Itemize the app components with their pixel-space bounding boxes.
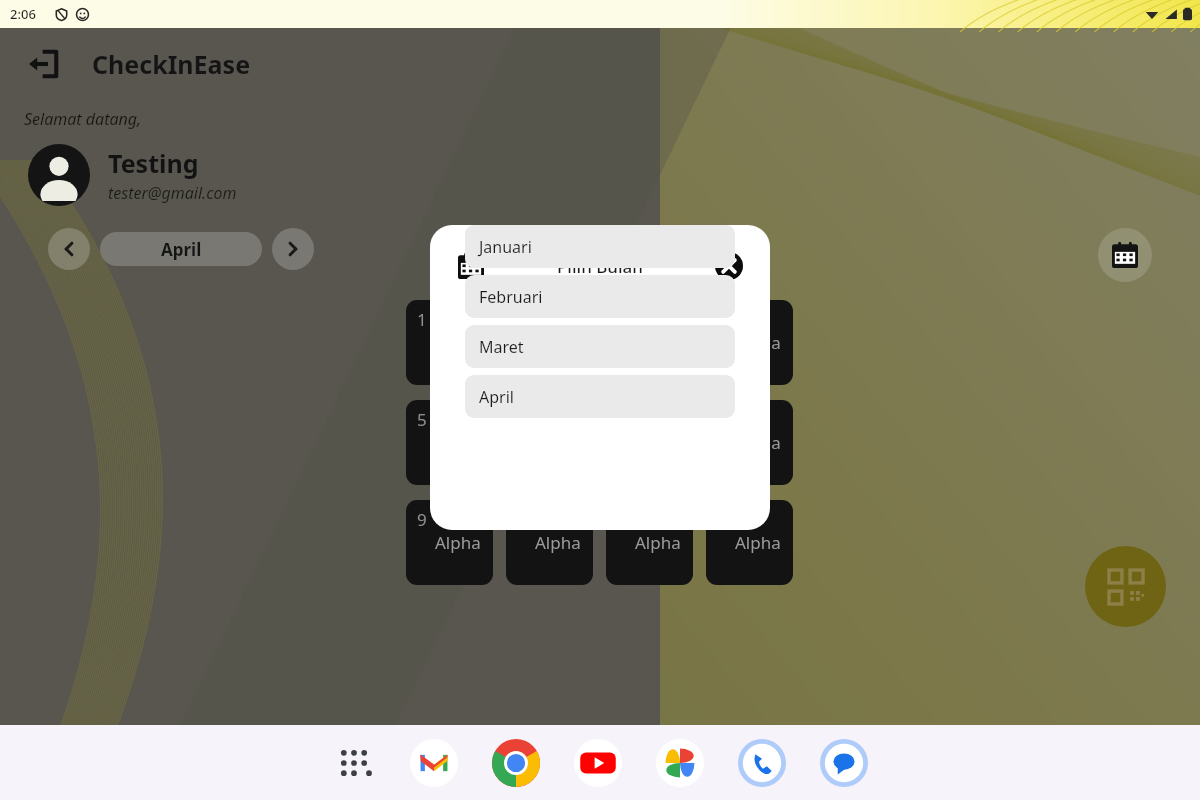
button[interactable]: April: [100, 232, 262, 266]
staticText: 5: [417, 408, 427, 431]
staticText: Februari: [479, 286, 543, 308]
staticText: Pilih Bulan: [557, 255, 643, 278]
staticText: Selamat datang,: [24, 108, 142, 130]
button[interactable]: YouTube: [572, 737, 624, 789]
button[interactable]: 5: [406, 400, 493, 485]
button[interactable]: 1: [406, 300, 493, 385]
button[interactable]: Open calendar: [1098, 228, 1152, 282]
staticText: 11: [617, 508, 637, 531]
button[interactable]: Januari: [465, 225, 735, 268]
staticText: Alpha: [535, 531, 581, 554]
button[interactable]: Close: [714, 251, 744, 281]
staticText: Alpha: [435, 531, 481, 554]
button[interactable]: 6: [506, 400, 593, 485]
staticText: 7: [617, 408, 627, 431]
staticText: 3: [617, 308, 627, 331]
button[interactable]: 7: [606, 400, 693, 485]
staticText: 8: [717, 408, 727, 431]
staticText: 2: [517, 308, 527, 331]
staticText: Alpha: [435, 331, 481, 354]
button[interactable]: 10: [506, 500, 593, 585]
staticText: 2:06: [10, 5, 36, 23]
staticText: 4: [717, 308, 727, 331]
staticText: Testing: [108, 146, 199, 180]
button[interactable]: Februari: [465, 275, 735, 318]
button[interactable]: Photos: [654, 737, 706, 789]
staticText: 12: [717, 508, 737, 531]
button[interactable]: 8: [706, 400, 793, 485]
button[interactable]: Phone: [736, 737, 788, 789]
button[interactable]: 12: [706, 500, 793, 585]
button[interactable]: Maret: [465, 325, 735, 368]
staticText: 1: [417, 308, 427, 331]
staticText: Alpha: [735, 431, 781, 454]
button[interactable]: Scan QR code: [1085, 546, 1166, 627]
staticText: Maret: [479, 336, 524, 358]
staticText: April: [161, 238, 202, 261]
button[interactable]: Next month: [272, 228, 314, 270]
staticText: CheckInEase: [92, 47, 251, 81]
button[interactable]: Logout: [22, 42, 66, 86]
button[interactable]: Messages: [818, 737, 870, 789]
button[interactable]: All apps: [330, 739, 378, 787]
button[interactable]: 11: [606, 500, 693, 585]
button[interactable]: 9: [406, 500, 493, 585]
button[interactable]: 4: [706, 300, 793, 385]
staticText: 6: [517, 408, 527, 431]
staticText: Alpha: [735, 331, 781, 354]
button[interactable]: Chrome: [490, 737, 542, 789]
staticText: 9: [417, 508, 427, 531]
staticText: Alpha: [735, 531, 781, 554]
staticText: 10: [517, 508, 537, 531]
button[interactable]: Previous month: [48, 228, 90, 270]
button[interactable]: Gmail: [408, 737, 460, 789]
button[interactable]: 3: [606, 300, 693, 385]
staticText: Alpha: [635, 531, 681, 554]
staticText: tester@gmail.com: [108, 182, 237, 204]
staticText: April: [479, 386, 514, 408]
button[interactable]: April: [465, 375, 735, 418]
staticText: Januari: [479, 236, 532, 258]
button[interactable]: 2: [506, 300, 593, 385]
